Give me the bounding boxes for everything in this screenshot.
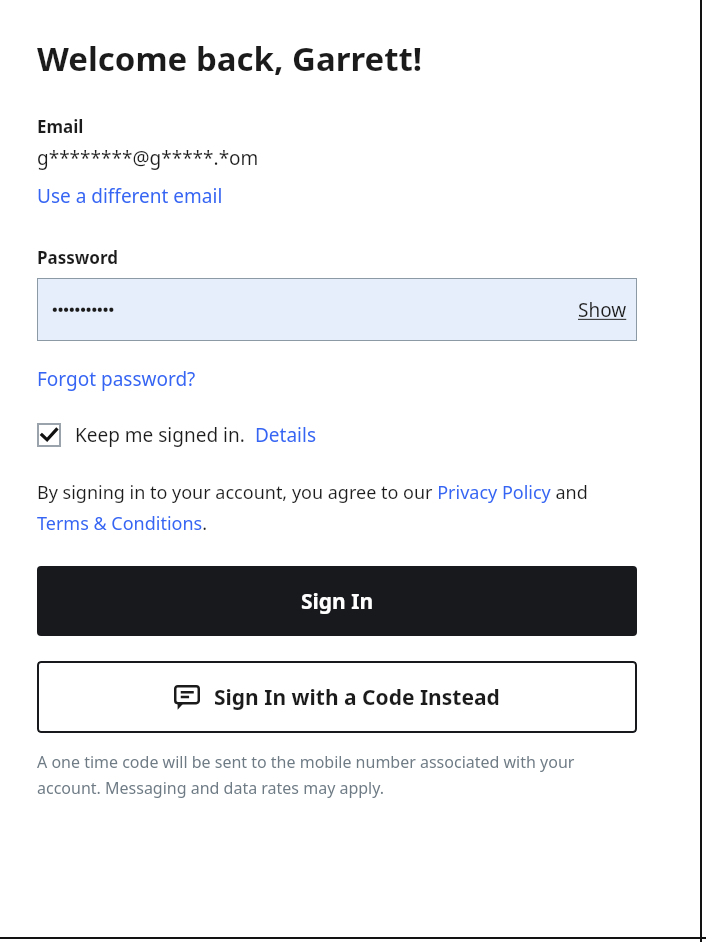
button[interactable]: ••••••••••• [37, 278, 637, 341]
button[interactable]: By signing in to your account, you agree… [37, 480, 637, 535]
button[interactable]: Details [255, 422, 317, 448]
button[interactable]: Use a different email [37, 183, 223, 209]
staticText: Sign In [301, 587, 374, 616]
staticText: Password [37, 246, 118, 269]
button[interactable]: Forgot password? [37, 366, 196, 392]
staticText: Welcome back, Garrett! [37, 36, 423, 81]
staticText: Email [37, 115, 84, 138]
button[interactable] [37, 423, 61, 447]
staticText: Keep me signed in. [75, 422, 245, 448]
button[interactable]: Show [568, 289, 637, 331]
button[interactable]: Sign In [37, 566, 637, 636]
staticText: Show [578, 297, 627, 323]
staticText: ••••••••••• [52, 299, 115, 319]
staticText: A one time code will be sent to the mobi… [37, 751, 637, 799]
button[interactable]: Sign In with a Code Instead [37, 661, 637, 733]
staticText: g********@g*****.*om [37, 145, 259, 171]
staticText: Sign In with a Code Instead [214, 683, 500, 712]
